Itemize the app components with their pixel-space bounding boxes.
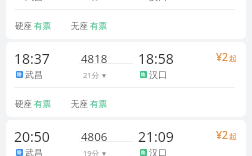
staticText: 18:37 (14, 49, 50, 68)
staticText: 终 (141, 72, 146, 78)
staticText: 21分 (83, 70, 100, 80)
staticText: 4806 (81, 129, 108, 145)
staticText: 起 (229, 54, 237, 63)
staticText: 武昌 (25, 0, 43, 2)
staticText: 起 (229, 132, 237, 141)
staticText: 25分 (83, 0, 100, 2)
staticText: 汉口 (149, 147, 167, 156)
staticText: 汉口 (149, 0, 167, 2)
staticText: 无座 (71, 99, 88, 110)
staticText: 18:58 (138, 49, 174, 68)
staticText: 有票 (90, 21, 107, 32)
staticText: 始 (17, 72, 22, 78)
button[interactable]: 20:50 (6, 120, 246, 156)
staticText: 19分 (83, 148, 100, 156)
staticText: 无座 (71, 21, 88, 32)
button[interactable]: 07:05 (6, 0, 246, 39)
staticText: 武昌 (25, 147, 43, 156)
staticText: ¥2 (216, 50, 229, 64)
staticText: 武昌 (25, 69, 43, 80)
staticText: 硬座 (15, 21, 32, 32)
staticText: 有票 (34, 99, 51, 110)
staticText: 始 (17, 150, 22, 156)
staticText: 硬座 (15, 99, 32, 110)
staticText: 有票 (34, 21, 51, 32)
staticText: ¥2 (216, 128, 229, 142)
staticText: 汉口 (149, 69, 167, 80)
button[interactable]: 18:37 (6, 42, 246, 117)
staticText: 有票 (90, 99, 107, 110)
staticText: 4818 (81, 51, 108, 67)
staticText: 21:09 (138, 127, 174, 146)
staticText: 20:50 (14, 127, 50, 146)
staticText: 终 (141, 150, 146, 156)
